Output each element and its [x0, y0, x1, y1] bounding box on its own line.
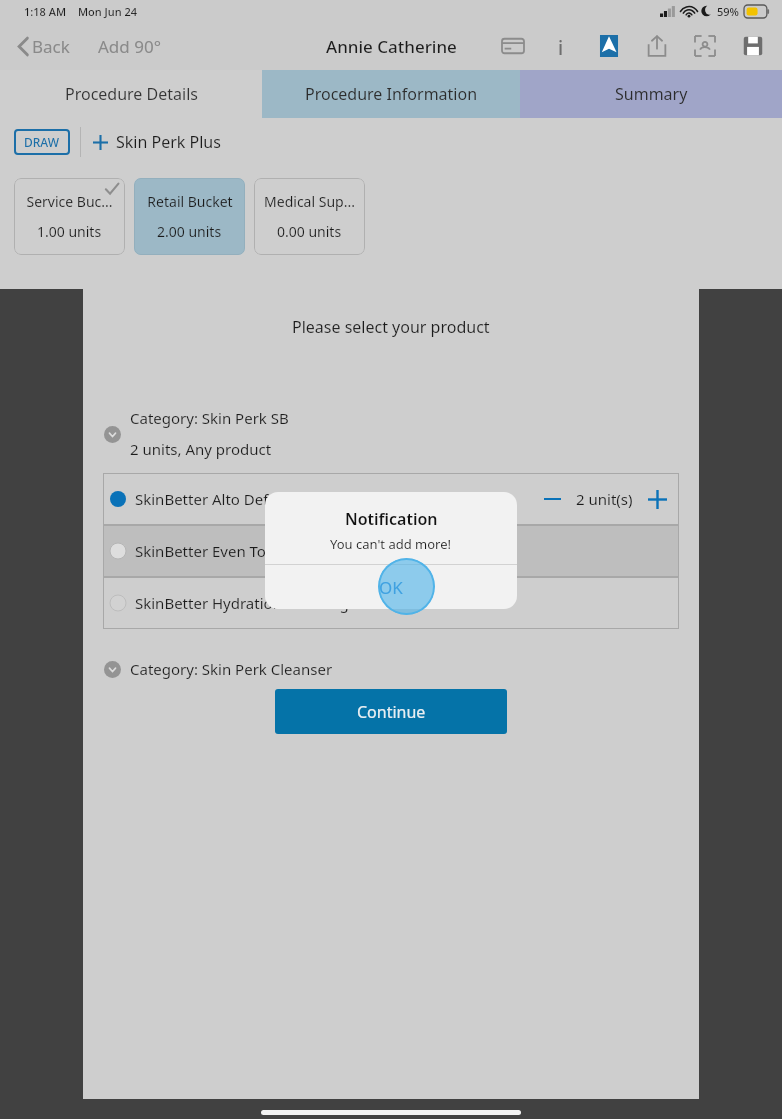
button[interactable]: Procedure Information [262, 70, 520, 118]
staticText: DRAW [24, 134, 60, 150]
staticText: Notification [345, 508, 438, 530]
button[interactable]: Medical Sup... [254, 178, 365, 255]
staticText: Procedure Details [65, 83, 198, 105]
staticText: SkinBetter Alto Defense Serum [135, 489, 537, 509]
staticText: 0.00 units [277, 222, 342, 241]
staticText: Annie Catherine [326, 35, 457, 58]
staticText: OK [379, 576, 403, 599]
staticText: Procedure Information [305, 83, 478, 105]
staticText: 2.00 units [157, 222, 222, 241]
button[interactable]: Save [740, 33, 766, 59]
staticText: You can't add more! [330, 535, 452, 553]
button[interactable]: Chart book [596, 33, 622, 59]
staticText: Category: Skin Perk SB [130, 408, 289, 428]
staticText: 59% [717, 4, 739, 19]
staticText: 2 unit(s) [576, 489, 633, 509]
button[interactable]: Summary [520, 70, 782, 118]
button[interactable]: Continue [275, 689, 507, 734]
staticText: Add 90° [98, 35, 161, 58]
staticText: Mon Jun 24 [78, 4, 138, 19]
button[interactable]: SkinBetter Hydration Boosting Cream [103, 577, 679, 629]
staticText: i [558, 35, 564, 57]
staticText: Please select your product [292, 316, 490, 338]
button[interactable]: SkinBetter Even Tone Correcting Serum [103, 525, 679, 577]
button[interactable]: Increase [642, 484, 672, 514]
staticText: Category: Skin Perk Cleanser [130, 659, 333, 679]
button[interactable]: SkinBetter Alto Defense Serum [103, 473, 679, 525]
button[interactable]: DRAW [14, 129, 70, 155]
staticText: Skin Perk Plus [116, 131, 221, 153]
button[interactable]: Collapse category [103, 425, 121, 443]
staticText: Summary [615, 83, 688, 105]
staticText: Medical Sup... [264, 192, 355, 211]
staticText: Service Buc... [26, 192, 113, 211]
staticText: Back [32, 35, 70, 58]
button[interactable]: Collapse category [103, 660, 121, 678]
button[interactable]: Information [548, 33, 574, 59]
staticText: 1.00 units [37, 222, 102, 241]
button[interactable]: Add 90° [94, 29, 165, 64]
staticText: Continue [357, 701, 426, 723]
button[interactable]: Service Buc... [14, 178, 125, 255]
button[interactable]: Share [644, 33, 670, 59]
staticText: SkinBetter Even Tone Correcting Serum [135, 541, 672, 561]
staticText: Retail Bucket [147, 192, 233, 211]
button[interactable]: Back [14, 29, 74, 64]
button[interactable]: OK [265, 565, 517, 609]
staticText: 1:18 AM [24, 4, 67, 19]
button[interactable]: Retail Bucket [134, 178, 245, 255]
staticText: 2 units, Any product [130, 439, 272, 459]
button[interactable]: Payment card [500, 33, 526, 59]
button[interactable]: Scan face [692, 33, 718, 59]
button[interactable]: Decrease [537, 484, 567, 514]
button[interactable]: Procedure Details [0, 70, 262, 118]
button[interactable]: Skin Perk Plus [91, 125, 223, 159]
staticText: SkinBetter Hydration Boosting Cream [135, 593, 672, 613]
